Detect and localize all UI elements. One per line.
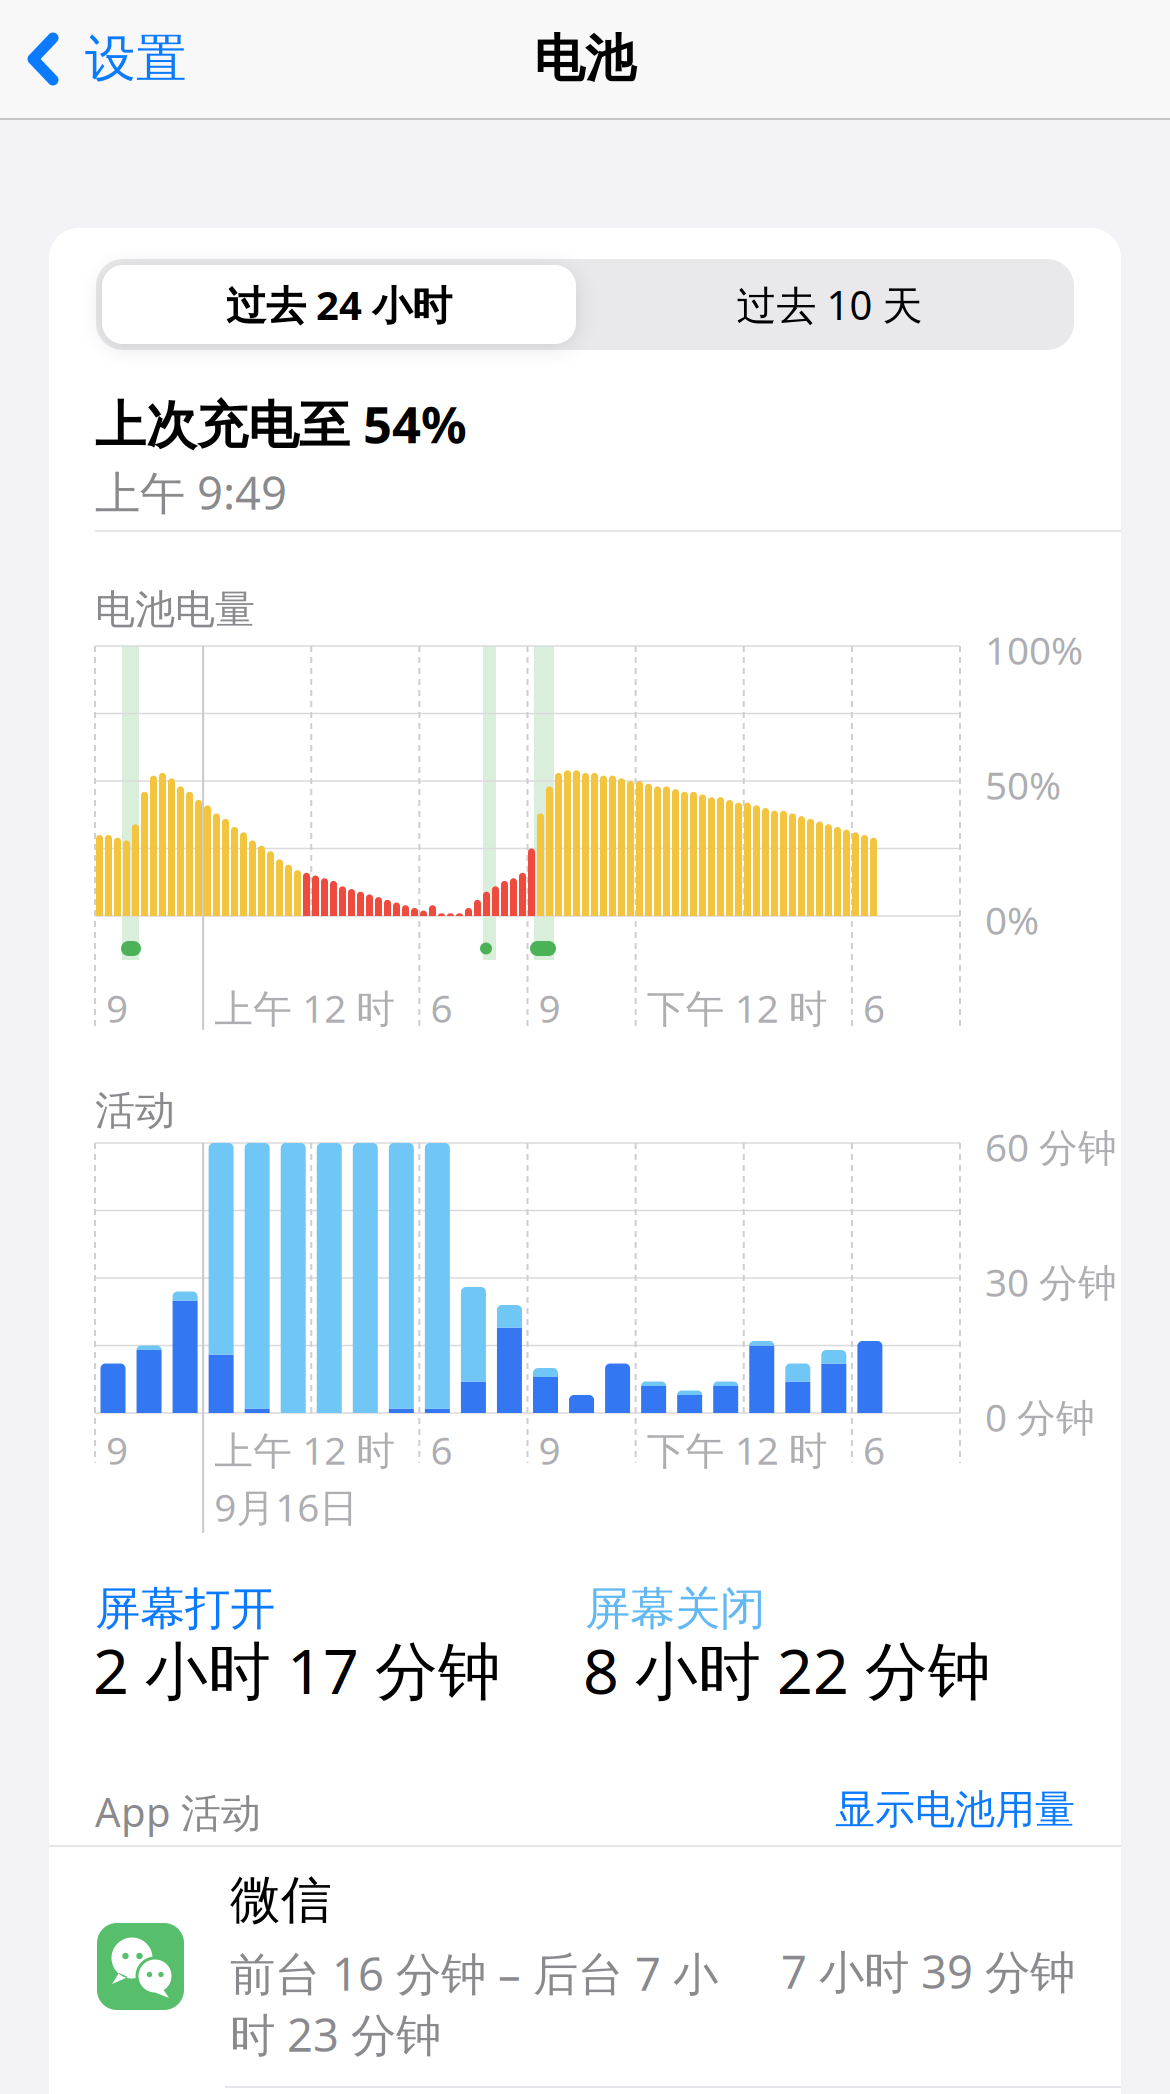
staticText: 屏幕关闭 — [585, 1581, 765, 1637]
staticText: 0% — [985, 894, 1039, 945]
staticText: 过去 24 小时 — [226, 278, 452, 331]
staticText: 6 — [863, 982, 885, 1033]
staticText: 8 小时 22 分钟 — [583, 1628, 991, 1711]
staticText: 50% — [985, 759, 1061, 810]
staticText: 6 — [430, 982, 452, 1033]
staticText: 6 — [863, 1424, 885, 1475]
staticText: 活动 — [95, 1086, 175, 1135]
staticText: 上午 9:49 — [95, 462, 287, 522]
staticText: 6 — [430, 1424, 452, 1475]
staticText: 时 23 分钟 — [230, 2004, 441, 2064]
staticText: 60 分钟 — [985, 1121, 1117, 1172]
staticText: 前台 16 分钟 – 后台 7 小 — [230, 1943, 718, 2003]
staticText: 设置 — [85, 28, 187, 90]
staticText: App 活动 — [95, 1785, 261, 1838]
staticText: 过去 10 天 — [736, 278, 922, 331]
staticText: 显示电池用量 — [835, 1785, 1075, 1834]
staticText: 微信 — [230, 1869, 332, 1931]
staticText: 9月16日 — [214, 1481, 358, 1532]
staticText: 100% — [985, 624, 1083, 675]
button[interactable]: 显示电池用量 — [575, 1785, 1075, 1834]
staticText: 9 — [538, 982, 560, 1033]
staticText: 屏幕打开 — [95, 1581, 275, 1637]
staticText: 9 — [106, 982, 128, 1033]
staticText: 7 小时 39 分钟 — [781, 1941, 1075, 2001]
staticText: 2 小时 17 分钟 — [93, 1628, 501, 1711]
staticText: 9 — [538, 1424, 560, 1475]
staticText: 上午 12 时 — [214, 1424, 395, 1475]
button[interactable]: 过去 24 小时 — [102, 265, 576, 344]
staticText: 电池电量 — [95, 585, 255, 634]
button[interactable]: 返回设置 — [27, 0, 187, 118]
button[interactable]: 微信 — [49, 1846, 1121, 2094]
staticText: 上午 12 时 — [214, 982, 395, 1033]
staticText: 9 — [106, 1424, 128, 1475]
staticText: 30 分钟 — [985, 1256, 1117, 1307]
staticText: 上次充电至 54% — [95, 390, 467, 457]
staticText: 0 分钟 — [985, 1391, 1095, 1442]
button[interactable]: 过去 10 天 — [585, 259, 1074, 350]
staticText: 下午 12 时 — [647, 982, 828, 1033]
staticText: 下午 12 时 — [647, 1424, 828, 1475]
staticText: 电池 — [534, 28, 636, 90]
